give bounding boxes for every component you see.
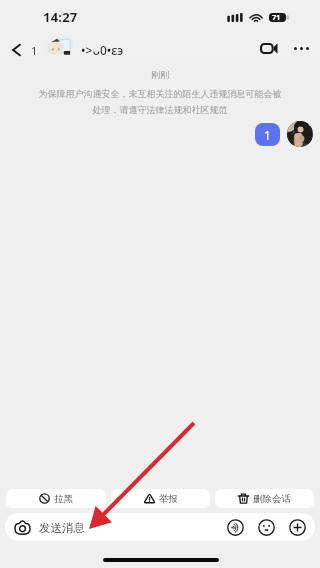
staticText: 刚刚 — [0, 69, 320, 80]
staticText: 14:27 — [43, 8, 78, 26]
button[interactable]: 发送消息 — [5, 520, 222, 535]
staticText: 举报 — [159, 493, 178, 505]
button[interactable]: Voice message — [222, 514, 248, 540]
button[interactable]: 拉黑 — [6, 489, 106, 508]
button[interactable]: Avatar — [287, 121, 313, 147]
staticText: 发送消息 — [39, 521, 85, 535]
button[interactable]: Video call — [256, 36, 282, 60]
button[interactable]: 1 — [255, 123, 280, 146]
staticText: 1 — [31, 43, 38, 58]
staticText: 为保障用户沟通安全，未互相关注的陌生人违规消息可能会被处理，请遵守法律法规和社区… — [37, 88, 283, 116]
button[interactable]: 删除会话 — [215, 489, 314, 508]
staticText: 拉黑 — [54, 493, 73, 505]
staticText: 1 — [264, 127, 271, 143]
button[interactable]: Add — [284, 514, 310, 540]
button[interactable]: 举报 — [111, 489, 210, 508]
staticText: 删除会话 — [253, 493, 291, 505]
button[interactable]: Emoji — [253, 514, 279, 540]
button[interactable]: More options — [288, 36, 314, 60]
button[interactable]: Back — [6, 38, 44, 62]
staticText: 71 — [272, 12, 281, 21]
staticText: •>ᴗ0•ɛ϶ — [81, 42, 124, 58]
